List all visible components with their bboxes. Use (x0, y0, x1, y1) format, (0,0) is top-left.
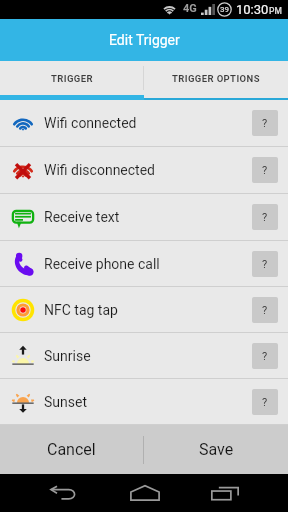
button[interactable]: ? (252, 110, 278, 136)
staticText: ? (262, 117, 268, 130)
staticText: TRIGGER OPTIONS (172, 73, 260, 84)
staticText: 4G (183, 2, 197, 15)
button[interactable]: Sunset (0, 379, 288, 424)
button[interactable]: ? (252, 389, 278, 415)
staticText: NFC tag tap (44, 302, 118, 318)
staticText: ? (262, 304, 268, 317)
button[interactable]: NFC tag tap (0, 287, 288, 332)
button[interactable]: Recent apps (185, 474, 265, 512)
staticText: Receive text (44, 209, 120, 225)
staticText: Receive phone call (44, 256, 160, 272)
button[interactable]: ? (252, 343, 278, 369)
staticText: PM (269, 6, 282, 16)
staticText: Sunset (44, 394, 87, 410)
button[interactable]: ? (252, 204, 278, 230)
staticText: Cancel (47, 440, 96, 459)
button[interactable]: Wifi connected (0, 100, 288, 146)
button[interactable]: Home (104, 474, 185, 512)
button[interactable]: Back (23, 474, 103, 512)
button[interactable]: TRIGGER (0, 61, 143, 95)
button[interactable]: ? (252, 157, 278, 183)
button[interactable]: ? (252, 297, 278, 323)
staticText: ? (262, 350, 268, 363)
button[interactable]: ? (252, 251, 278, 277)
staticText: Sunrise (44, 348, 91, 364)
staticText: 39 (220, 5, 230, 14)
staticText: ? (262, 164, 268, 177)
staticText: Wifi connected (44, 115, 137, 131)
staticText: TRIGGER (51, 73, 93, 84)
button[interactable]: Wifi disconnected (0, 147, 288, 193)
staticText: Wifi disconnected (44, 162, 156, 178)
staticText: 10:30 (236, 2, 269, 17)
staticText: Save (199, 440, 234, 459)
button[interactable]: Receive text (0, 194, 288, 240)
staticText: ? (262, 396, 268, 409)
staticText: Edit Trigger (109, 32, 180, 48)
button[interactable]: Save (144, 425, 288, 474)
button[interactable]: Cancel (0, 425, 143, 474)
button[interactable]: TRIGGER OPTIONS (144, 61, 288, 95)
button[interactable]: Receive phone call (0, 241, 288, 286)
staticText: ? (262, 258, 268, 271)
button[interactable]: Sunrise (0, 333, 288, 378)
staticText: ? (262, 211, 268, 224)
